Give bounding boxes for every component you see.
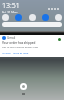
staticText: Fri, 31 May (2, 11, 18, 13)
button[interactable]: Toggle (29, 14, 36, 21)
button[interactable]: Toggle (15, 14, 22, 21)
staticText: Tap to see tracking details now (2, 45, 39, 48)
button[interactable]: Toggle (42, 14, 49, 21)
button[interactable]: Camera (20, 83, 27, 90)
button[interactable]: Mark as read (13, 51, 29, 54)
staticText: Your order has shipped (2, 41, 36, 45)
staticText: Archive (2, 51, 11, 54)
button[interactable]: Brightness (2, 22, 62, 27)
staticText: Gmail (7, 36, 16, 40)
button[interactable]: Toggle (55, 14, 62, 21)
button[interactable]: Toggle (2, 14, 9, 21)
staticText: Mark as read (13, 51, 29, 54)
staticText: 13:51 (2, 1, 20, 11)
button[interactable]: Gmail (0, 35, 64, 57)
button[interactable]: Archive (2, 51, 11, 54)
